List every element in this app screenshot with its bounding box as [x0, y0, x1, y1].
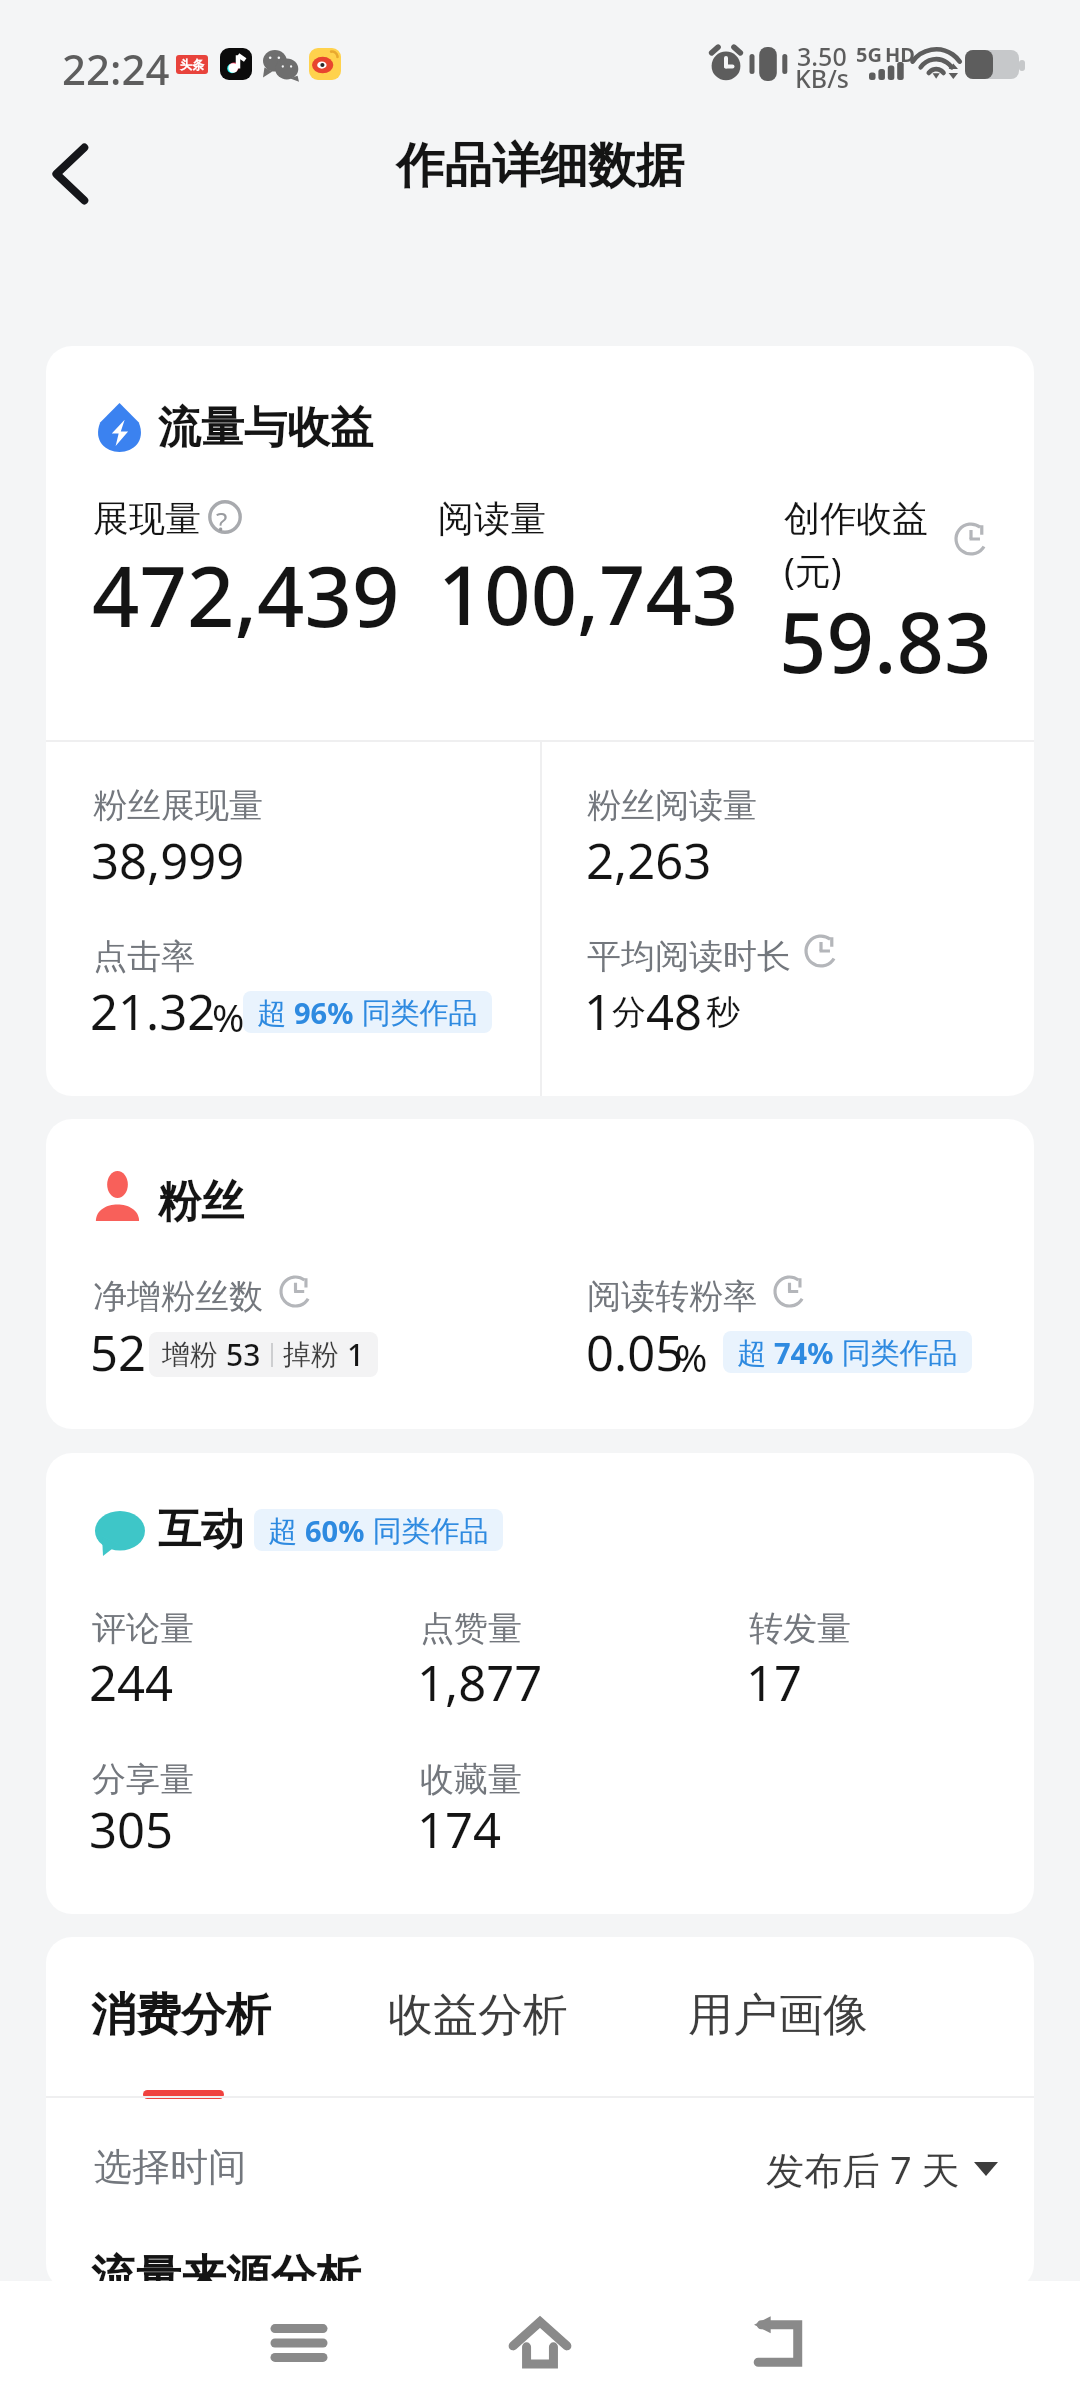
button[interactable]: Recent apps	[244, 2288, 354, 2398]
staticText: 互动	[158, 1503, 244, 1557]
staticText: 1,877	[417, 1649, 543, 1716]
staticText: (元)	[784, 546, 842, 595]
staticText: 21.32	[90, 978, 216, 1045]
staticText: 创作收益	[784, 496, 928, 541]
staticText: 超	[268, 1510, 305, 1550]
staticText: 选择时间	[94, 2143, 246, 2191]
button[interactable]: 发布后 7 天	[766, 2143, 998, 2195]
staticText: 流量来源分析	[91, 2249, 361, 2290]
staticText: 5G	[856, 41, 882, 68]
staticText: 59.83	[779, 584, 992, 697]
staticText: 用户画像	[688, 1987, 868, 2044]
staticText: 流量与收益	[158, 401, 373, 455]
staticText: 净增粉丝数	[93, 1275, 263, 1318]
staticText: 52	[90, 1319, 147, 1386]
staticText: 1	[584, 978, 613, 1045]
button[interactable]: 消费分析	[91, 1987, 271, 2044]
staticText: 22:24	[62, 40, 170, 97]
staticText: 头条	[180, 57, 204, 72]
staticText: 同类作品	[365, 1510, 489, 1550]
staticText: 超	[737, 1332, 774, 1372]
staticText: 平均阅读时长	[587, 935, 791, 978]
staticText: 阅读转粉率	[587, 1275, 757, 1318]
staticText: 分	[612, 991, 646, 1034]
staticText: 点击率	[93, 935, 195, 978]
staticText: HD	[885, 41, 915, 68]
staticText: 作品详细数据	[396, 136, 684, 196]
staticText: 53	[226, 1334, 261, 1375]
staticText: 100,743	[438, 538, 739, 648]
staticText: 1	[347, 1334, 365, 1375]
staticText: 增粉	[162, 1337, 218, 1372]
staticText: 同类作品	[354, 992, 478, 1032]
staticText: 秒	[706, 991, 740, 1034]
button[interactable]: Home	[485, 2288, 595, 2398]
staticText: 评论量	[92, 1607, 194, 1650]
staticText: 74%	[774, 1333, 834, 1372]
button[interactable]: Back	[29, 133, 111, 215]
staticText: 超	[257, 992, 294, 1032]
staticText: 244	[89, 1649, 174, 1716]
staticText: 粉丝	[158, 1175, 244, 1229]
staticText: 472,439	[92, 538, 400, 651]
staticText: 点赞量	[420, 1607, 522, 1650]
staticText: %	[212, 990, 245, 1043]
staticText: 17	[746, 1649, 803, 1716]
staticText: %	[675, 1330, 708, 1383]
staticText: ?	[216, 503, 228, 538]
staticText: 96%	[294, 993, 354, 1032]
staticText: 38,999	[91, 827, 245, 894]
staticText: 粉丝展现量	[93, 784, 263, 827]
staticText: 305	[89, 1796, 174, 1863]
staticText: 3.50	[797, 39, 847, 73]
staticText: 阅读量	[438, 496, 546, 541]
staticText: 0.05	[586, 1319, 684, 1386]
staticText: 分享量	[92, 1758, 194, 1801]
button[interactable]: 用户画像	[688, 1987, 868, 2044]
button[interactable]: 收益分析	[388, 1987, 568, 2044]
staticText: 转发量	[749, 1607, 851, 1650]
staticText: 2,263	[586, 827, 712, 894]
staticText: 174	[417, 1796, 502, 1863]
button[interactable]: Back	[724, 2288, 834, 2398]
staticText: 收益分析	[388, 1987, 568, 2044]
staticText: 展现量	[93, 496, 201, 541]
staticText: 48	[646, 978, 703, 1045]
staticText: 粉丝阅读量	[587, 784, 757, 827]
staticText: 发布后 7 天	[766, 2143, 960, 2195]
staticText: 同类作品	[834, 1332, 958, 1372]
staticText: KB/s	[795, 61, 849, 95]
staticText: 消费分析	[91, 1987, 271, 2044]
staticText: 60%	[305, 1511, 365, 1550]
staticText: 掉粉	[283, 1337, 339, 1372]
staticText: 收藏量	[420, 1758, 522, 1801]
